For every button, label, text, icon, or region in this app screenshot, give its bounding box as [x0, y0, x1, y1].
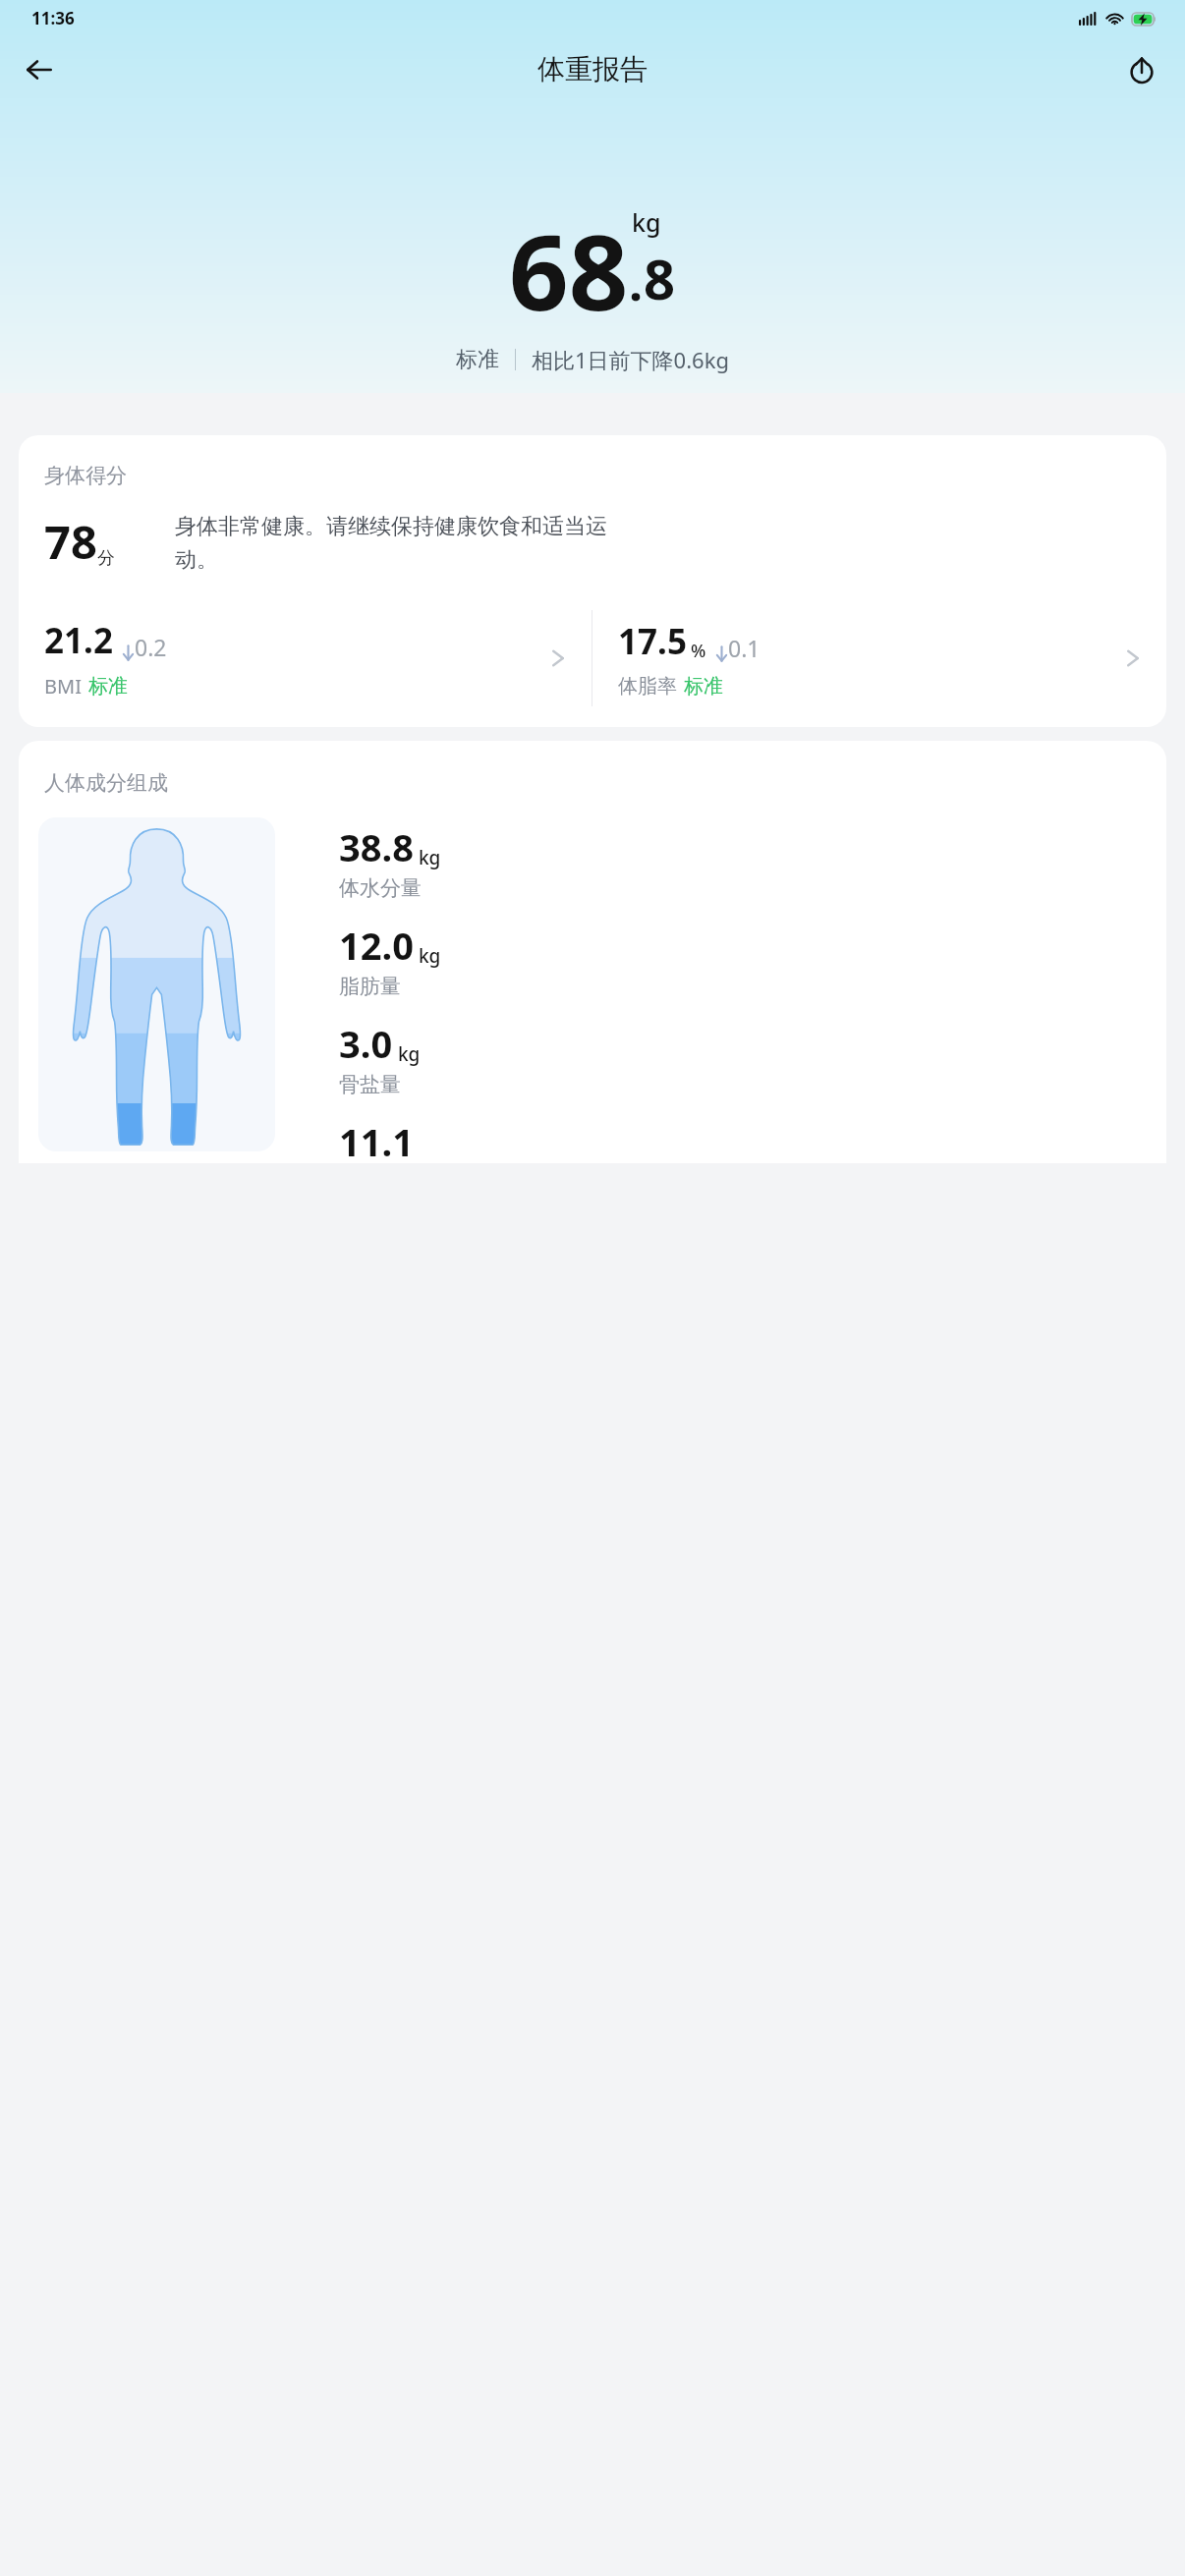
staticText: 0.2 [135, 632, 167, 662]
staticText: 12.0 [339, 920, 414, 971]
staticText: 骨盐量 [339, 1072, 401, 1097]
staticText: 分 [97, 547, 115, 570]
staticText: 体脂率 [618, 674, 677, 699]
staticText: 3.0 [339, 1018, 393, 1069]
button[interactable]: Share [1116, 44, 1167, 95]
staticText: 体水分量 [339, 875, 422, 901]
staticText: 体重报告 [537, 52, 648, 86]
staticText: 21.2 [44, 617, 113, 664]
staticText: 68 [509, 199, 629, 341]
staticText: 身体非常健康。请继续保持健康饮食和适当运 动。 [175, 513, 607, 574]
staticText: 17.5 [618, 618, 687, 665]
staticText: 11:36 [31, 7, 75, 29]
button[interactable]: 17.5 [592, 603, 1166, 713]
staticText: 标准 [456, 346, 499, 373]
staticText: 标准 [88, 674, 128, 699]
staticText: . [629, 249, 644, 315]
staticText: 0.1 [728, 633, 761, 663]
staticText: 38.8 [339, 821, 414, 872]
staticText: 78 [44, 510, 97, 573]
staticText: kg [419, 845, 441, 870]
staticText: BMI [44, 673, 82, 700]
staticText: kg [419, 943, 441, 969]
staticText: % [691, 639, 706, 663]
staticText: kg [632, 205, 661, 239]
staticText: 标准 [684, 674, 723, 699]
button[interactable]: Back [14, 44, 65, 95]
staticText: 身体得分 [44, 463, 127, 488]
button[interactable]: 21.2 [19, 603, 592, 713]
staticText: 人体成分组成 [44, 770, 168, 796]
staticText: 11.1 [339, 1116, 414, 1163]
staticText: 脂肪量 [339, 974, 401, 999]
staticText: 8 [644, 241, 676, 315]
staticText: 相比1日前下降0.6kg [532, 345, 729, 374]
staticText: kg [398, 1041, 421, 1067]
